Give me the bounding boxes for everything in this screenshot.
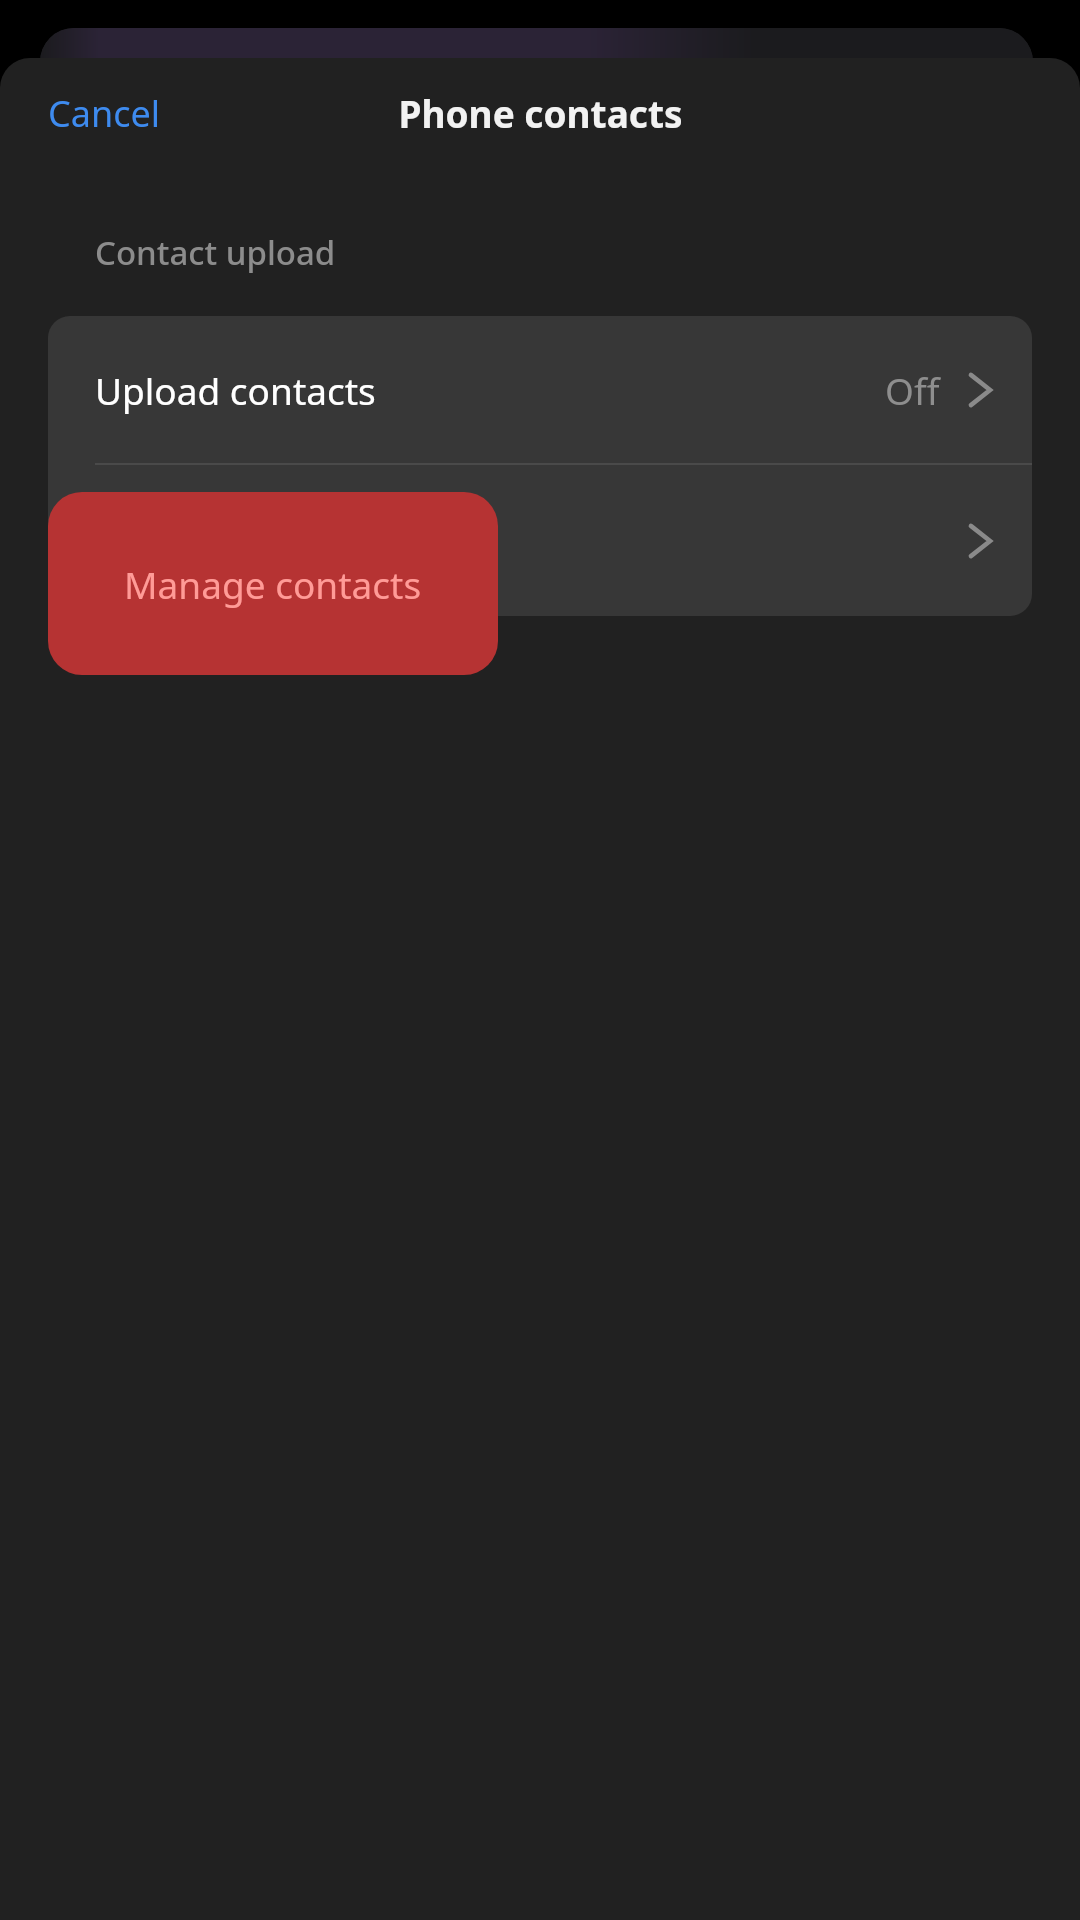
other: Open	[968, 369, 992, 411]
staticText: Manage contacts	[124, 559, 422, 609]
other: Open	[968, 520, 992, 562]
staticText: Contact upload	[95, 230, 336, 275]
staticText: Phone contacts	[398, 88, 683, 138]
staticText: Off	[885, 365, 940, 415]
button[interactable]: Cancel	[28, 79, 181, 148]
button[interactable]: Manage contacts	[48, 492, 498, 675]
staticText: Upload contacts	[95, 365, 376, 415]
button[interactable]: Upload contacts	[48, 316, 1032, 463]
staticText: Cancel	[48, 89, 161, 138]
button[interactable]: Open	[48, 465, 1032, 616]
